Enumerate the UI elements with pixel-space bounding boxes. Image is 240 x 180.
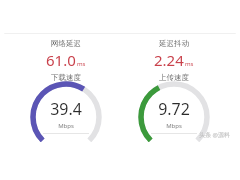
staticText: 延迟抖动	[159, 39, 189, 48]
staticText: 9.72	[158, 98, 190, 120]
staticText: 39.4	[50, 98, 82, 120]
button[interactable]: 延迟抖动	[131, 39, 217, 70]
staticText: 网络延迟	[51, 39, 81, 48]
staticText: ms	[185, 60, 194, 68]
button[interactable]: 上传速度	[124, 73, 224, 134]
button[interactable]: 网络延迟	[4, 33, 236, 142]
staticText: 61.0	[46, 50, 76, 70]
button[interactable]: 网络延迟	[23, 39, 109, 70]
staticText: 头条 @源料	[199, 131, 230, 139]
staticText: 下载速度	[51, 73, 81, 82]
other: 下载速度	[29, 82, 103, 132]
staticText: Mbps	[58, 122, 74, 130]
staticText: 上传速度	[159, 73, 189, 82]
staticText: ms	[77, 60, 86, 68]
staticText: 2.24	[154, 50, 184, 70]
staticText: Mbps	[166, 122, 182, 130]
button[interactable]: 下载速度	[16, 73, 116, 134]
other: 上传速度	[137, 82, 211, 132]
